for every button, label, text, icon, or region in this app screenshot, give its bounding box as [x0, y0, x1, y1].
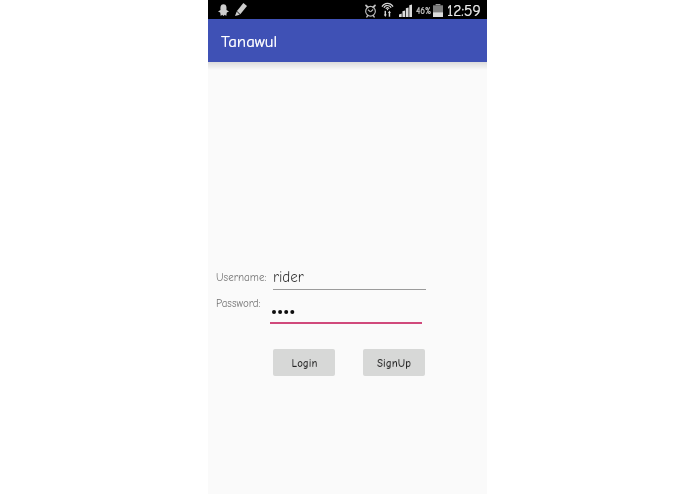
other: Mobile signal: [399, 4, 412, 17]
staticText: SignUp: [377, 357, 411, 370]
other: Note notification: [235, 3, 247, 16]
button[interactable]: [270, 303, 422, 326]
staticText: Tanawul: [221, 32, 278, 51]
staticText: Username:: [216, 271, 267, 284]
other: Alarm set: [365, 4, 376, 17]
other: Snapchat notification: [218, 4, 229, 16]
other: Wi-Fi connected: [381, 3, 394, 17]
staticText: 46%: [416, 6, 432, 16]
staticText: Password:: [216, 297, 261, 310]
staticText: 12:59: [447, 2, 481, 20]
button[interactable]: Login: [273, 349, 335, 376]
staticText: rider: [273, 268, 304, 285]
staticText: Login: [291, 357, 318, 370]
other: Battery 46 percent: [433, 4, 443, 17]
button[interactable]: rider: [273, 268, 426, 290]
button[interactable]: SignUp: [363, 349, 425, 376]
